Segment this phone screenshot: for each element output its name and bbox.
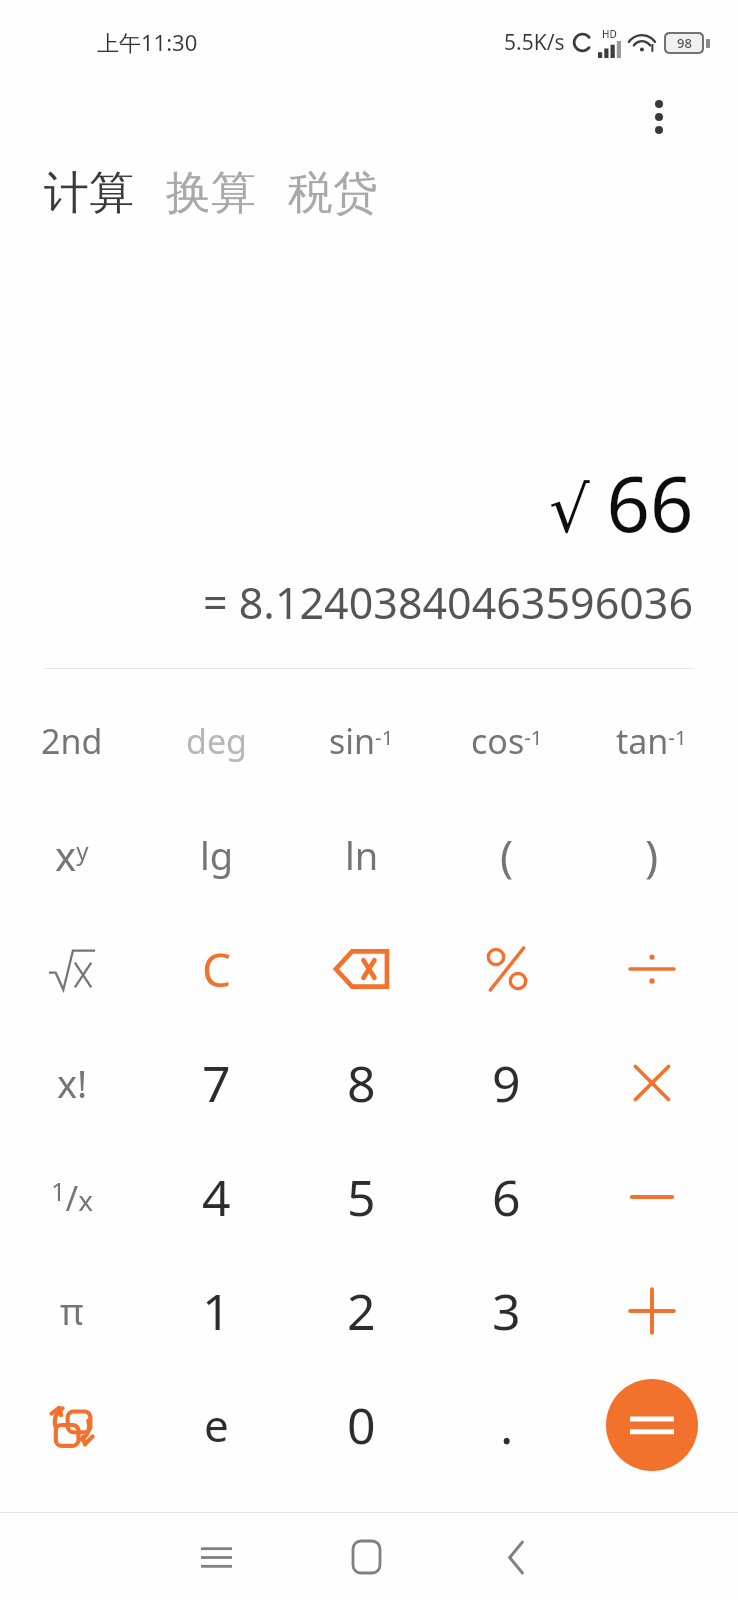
button[interactable]: tan-1 xyxy=(579,683,724,798)
staticText: 0 xyxy=(347,1391,376,1459)
button[interactable]: ln xyxy=(289,798,434,912)
staticText: deg xyxy=(186,718,247,764)
staticText: 5.5K/s xyxy=(504,28,565,57)
button[interactable]: 2 xyxy=(289,1254,434,1368)
staticText: 98 xyxy=(677,34,692,52)
staticText: 2 xyxy=(347,1277,376,1345)
staticText: xy xyxy=(55,828,89,882)
button[interactable]: 3 xyxy=(434,1254,579,1368)
button[interactable]: Plus xyxy=(579,1254,724,1368)
button[interactable]: Minus xyxy=(579,1140,724,1254)
staticText: ) xyxy=(645,825,659,885)
button[interactable]: Square root xyxy=(0,912,144,1026)
button[interactable]: Recent apps xyxy=(185,1526,247,1588)
button[interactable]: Back xyxy=(485,1526,547,1588)
button[interactable]: 计算 xyxy=(44,165,150,222)
staticText: 1 xyxy=(202,1277,231,1345)
button[interactable]: 6 xyxy=(434,1140,579,1254)
staticText: 3 xyxy=(492,1277,521,1345)
button[interactable]: Equals xyxy=(579,1368,724,1482)
button[interactable]: 4 xyxy=(144,1140,289,1254)
staticText: 4 xyxy=(202,1163,231,1231)
button[interactable]: 1/x xyxy=(0,1140,144,1254)
button[interactable]: Divide xyxy=(579,912,724,1026)
staticText: 上午11:30 xyxy=(97,27,198,57)
button[interactable]: Home xyxy=(335,1526,397,1588)
staticText: π xyxy=(60,1287,84,1336)
staticText: 2nd xyxy=(41,718,103,764)
button[interactable]: lg xyxy=(144,798,289,912)
button[interactable]: More options xyxy=(629,87,689,147)
button[interactable]: . xyxy=(434,1368,579,1482)
staticText: 1/x xyxy=(51,1174,93,1220)
staticText: C xyxy=(202,938,232,1001)
staticText: 6 xyxy=(492,1163,521,1231)
staticText: lg xyxy=(200,829,234,881)
staticText: sin-1 xyxy=(329,718,394,764)
staticText: 9 xyxy=(492,1049,521,1117)
button[interactable]: deg xyxy=(144,683,289,798)
button[interactable]: x! xyxy=(0,1026,144,1140)
staticText: HD xyxy=(602,27,617,41)
button[interactable]: 税贷 xyxy=(272,165,394,222)
button[interactable]: ( xyxy=(434,798,579,912)
staticText: 7 xyxy=(202,1049,231,1117)
button[interactable]: 1 xyxy=(144,1254,289,1368)
staticText: 换算 xyxy=(166,165,256,222)
button[interactable]: Convert xyxy=(0,1368,144,1482)
button[interactable]: Percent xyxy=(434,912,579,1026)
staticText: 8 xyxy=(347,1049,376,1117)
button[interactable]: 8 xyxy=(289,1026,434,1140)
button[interactable]: 7 xyxy=(144,1026,289,1140)
staticText: cos-1 xyxy=(471,718,543,764)
staticText: = 8.12403840463596036 xyxy=(203,573,694,632)
staticText: . xyxy=(500,1391,514,1459)
button[interactable]: 0 xyxy=(289,1368,434,1482)
staticText: 5 xyxy=(347,1163,376,1231)
button[interactable]: Equals xyxy=(606,1379,698,1471)
staticText: e xyxy=(204,1395,229,1455)
button[interactable]: 9 xyxy=(434,1026,579,1140)
staticText: tan-1 xyxy=(616,718,687,764)
button[interactable]: e xyxy=(144,1368,289,1482)
staticText: x! xyxy=(57,1057,88,1109)
button[interactable]: xy xyxy=(0,798,144,912)
staticText: 税贷 xyxy=(288,165,378,222)
button[interactable]: Multiply xyxy=(579,1026,724,1140)
staticText: ( xyxy=(500,825,514,885)
button[interactable]: cos-1 xyxy=(434,683,579,798)
button[interactable]: Backspace xyxy=(289,912,434,1026)
button[interactable]: 5 xyxy=(289,1140,434,1254)
button[interactable]: C xyxy=(144,912,289,1026)
staticText: 计算 xyxy=(44,165,134,222)
staticText: ln xyxy=(345,829,379,881)
staticText: √ 66 xyxy=(549,451,694,555)
button[interactable]: ) xyxy=(579,798,724,912)
button[interactable]: sin-1 xyxy=(289,683,434,798)
button[interactable]: π xyxy=(0,1254,144,1368)
button[interactable]: 换算 xyxy=(150,165,272,222)
button[interactable]: 2nd xyxy=(0,683,144,798)
